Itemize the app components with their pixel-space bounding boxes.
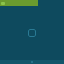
button[interactable]: Header action bbox=[0, 0, 38, 6]
button[interactable]: Open tile bbox=[28, 29, 36, 37]
button[interactable]: Header action bbox=[1, 2, 5, 5]
